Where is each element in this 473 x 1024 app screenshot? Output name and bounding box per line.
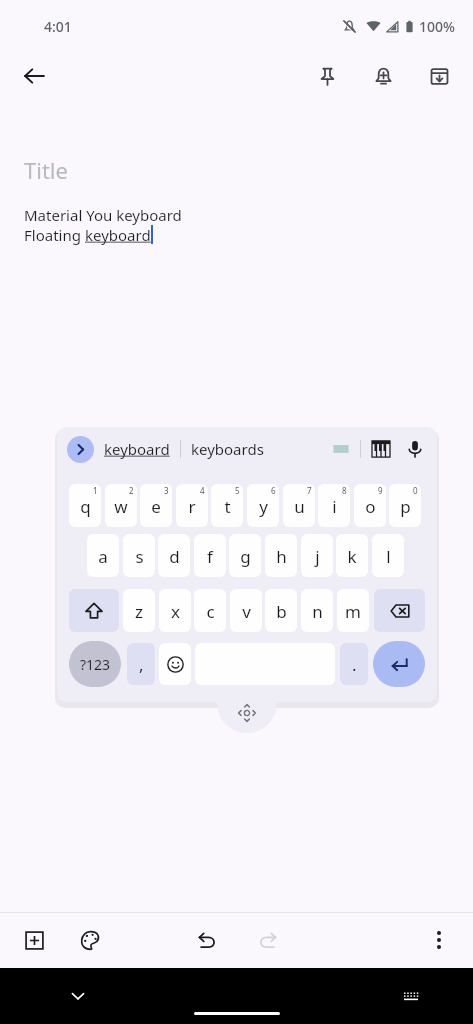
button[interactable]: g	[229, 534, 261, 577]
button[interactable]: ?123	[69, 641, 121, 687]
staticText: w	[114, 495, 128, 518]
staticText: b	[276, 600, 287, 623]
button[interactable]: Undo	[185, 918, 229, 962]
button[interactable]: o	[354, 484, 386, 527]
staticText: keyboard	[85, 225, 151, 245]
button[interactable]: Hide keyboard	[58, 976, 98, 1016]
button[interactable]: Switch keyboard	[391, 976, 431, 1016]
staticText: d	[169, 545, 180, 568]
button[interactable]: a	[87, 534, 119, 577]
button[interactable]: keyboard	[104, 439, 170, 459]
staticText: p	[400, 495, 411, 518]
staticText: z	[135, 600, 143, 623]
button[interactable]: z	[123, 589, 155, 632]
button[interactable]: Move keyboard	[217, 701, 277, 733]
button[interactable]: c	[194, 589, 226, 632]
button[interactable]: j	[301, 534, 333, 577]
button[interactable]: .	[340, 643, 368, 685]
button[interactable]: p	[389, 484, 421, 527]
button[interactable]: Enter	[373, 641, 425, 687]
button[interactable]: r	[176, 484, 208, 527]
button[interactable]: More options	[417, 918, 461, 962]
button[interactable]: Voice input	[403, 437, 427, 461]
staticText: l	[386, 545, 391, 568]
button[interactable]: ,	[127, 643, 155, 685]
button[interactable]: x	[159, 589, 191, 632]
staticText: ?123	[80, 655, 111, 674]
staticText: 7	[307, 485, 312, 496]
button[interactable]: u	[283, 484, 315, 527]
staticText: j	[315, 545, 320, 568]
staticText: 9	[378, 485, 383, 496]
button[interactable]: Background options	[68, 918, 112, 962]
staticText: 0	[413, 485, 418, 496]
staticText: a	[98, 545, 108, 568]
button[interactable]: e	[140, 484, 172, 527]
button[interactable]: Expand	[67, 436, 94, 463]
staticText: 3	[164, 485, 169, 496]
staticText: 4	[200, 485, 205, 496]
button[interactable]: keyboards	[191, 439, 264, 459]
button[interactable]: y	[247, 484, 279, 527]
button[interactable]: n	[301, 589, 333, 632]
button[interactable]: Remind me	[361, 54, 405, 98]
button[interactable]: Backspace	[374, 589, 425, 632]
staticText: e	[151, 495, 161, 518]
button[interactable]: l	[372, 534, 404, 577]
button[interactable]: q	[69, 484, 101, 527]
staticText: 1	[93, 485, 98, 496]
button[interactable]: Pin	[305, 54, 349, 98]
staticText: y	[259, 495, 268, 518]
button[interactable]: Archive	[417, 54, 461, 98]
staticText: f	[207, 545, 213, 568]
button[interactable]: b	[265, 589, 297, 632]
staticText: g	[240, 545, 251, 568]
button[interactable]: k	[336, 534, 368, 577]
button[interactable]: Shift	[69, 589, 119, 632]
button[interactable]: Redo	[245, 918, 289, 962]
button[interactable]: m	[337, 589, 369, 632]
staticText: 8	[342, 485, 347, 496]
staticText: t	[224, 495, 231, 518]
staticText: h	[276, 545, 287, 568]
button[interactable]: s	[123, 534, 155, 577]
button[interactable]: Back	[12, 54, 56, 98]
button[interactable]: v	[230, 589, 262, 632]
staticText: x	[171, 600, 180, 623]
staticText: .	[352, 653, 357, 676]
staticText: Title	[24, 155, 68, 185]
staticText: u	[294, 495, 305, 518]
staticText: 100%	[419, 17, 455, 36]
staticText: Material You keyboard	[24, 205, 182, 225]
button[interactable]: Piano	[369, 437, 393, 461]
staticText: q	[80, 495, 91, 518]
button[interactable]: t	[211, 484, 243, 527]
staticText: r	[188, 495, 196, 518]
staticText: k	[347, 545, 357, 568]
staticText: keyboards	[191, 439, 264, 459]
staticText: v	[242, 600, 251, 623]
staticText: m	[345, 600, 361, 623]
button[interactable]: i	[318, 484, 350, 527]
staticText: n	[312, 600, 323, 623]
button[interactable]: d	[158, 534, 190, 577]
button[interactable]: Emoji	[159, 643, 191, 685]
staticText: s	[135, 545, 144, 568]
staticText: 5	[235, 485, 240, 496]
button[interactable]: Add	[12, 918, 56, 962]
staticText: i	[332, 495, 337, 518]
staticText: 4:01	[44, 17, 72, 36]
staticText: 6	[271, 485, 276, 496]
staticText: Floating	[24, 225, 85, 245]
button[interactable]: w	[105, 484, 137, 527]
staticText: keyboard	[104, 439, 170, 459]
button[interactable]: Keyboard layout	[330, 438, 352, 460]
staticText: o	[365, 495, 376, 518]
staticText: 2	[129, 485, 134, 496]
staticText: c	[206, 600, 215, 623]
button[interactable]: h	[265, 534, 297, 577]
staticText: ,	[139, 653, 144, 676]
button[interactable]: f	[194, 534, 226, 577]
